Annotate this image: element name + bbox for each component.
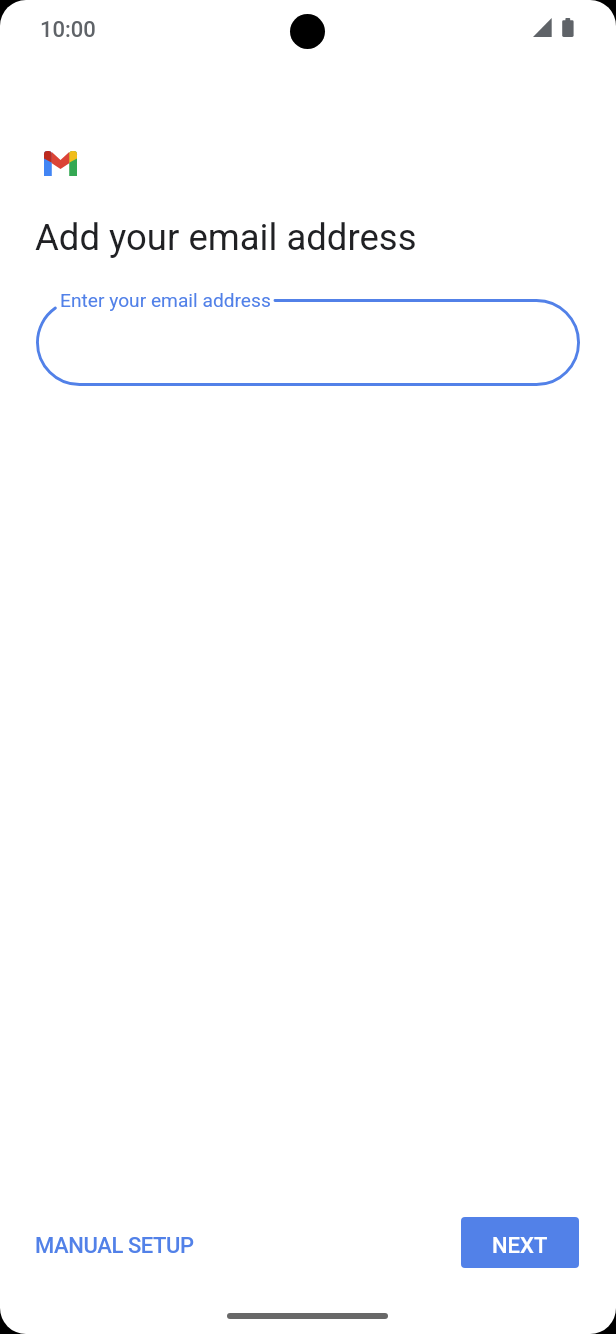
staticText: Enter your email address xyxy=(60,289,271,312)
button[interactable]: NEXT xyxy=(461,1217,579,1268)
button[interactable]: MANUAL SETUP xyxy=(22,1225,207,1267)
staticText: 10:00 xyxy=(40,17,96,43)
button[interactable]: Enter your email address xyxy=(36,299,580,386)
staticText: Add your email address xyxy=(35,216,417,259)
staticText: NEXT xyxy=(492,1233,548,1259)
staticText: MANUAL SETUP xyxy=(35,1233,194,1259)
